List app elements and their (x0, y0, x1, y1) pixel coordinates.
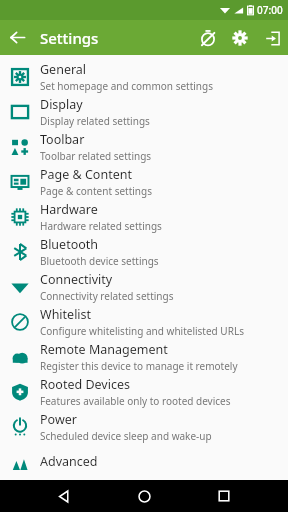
button[interactable]: Whitelist (0, 304, 288, 339)
button[interactable]: Display (0, 94, 288, 129)
button[interactable]: Exit (256, 22, 288, 54)
staticText: Whitelist (40, 306, 92, 323)
button[interactable]: Hardware (0, 199, 288, 234)
staticText: Rooted Devices (40, 376, 130, 393)
staticText: Hardware (40, 201, 98, 218)
staticText: Register this device to manage it remote… (40, 359, 238, 373)
staticText: Configure whitelisting and whitelisted U… (40, 324, 244, 338)
staticText: Settings (40, 28, 99, 48)
button[interactable]: Power (0, 409, 288, 444)
staticText: Page & Content (40, 166, 132, 183)
button[interactable]: General (0, 59, 288, 94)
staticText: Toolbar related settings (40, 149, 152, 163)
button[interactable]: Back (48, 480, 80, 512)
staticText: Remote Management (40, 341, 168, 358)
button[interactable]: Remote Management (0, 339, 288, 374)
button[interactable]: Rooted Devices (0, 374, 288, 409)
button[interactable]: Back (0, 20, 35, 55)
button[interactable]: Connectivity (0, 269, 288, 304)
button[interactable]: Bluetooth (0, 234, 288, 269)
staticText: Advanced (40, 453, 98, 470)
staticText: Toolbar (40, 131, 85, 148)
staticText: Hardware related settings (40, 219, 162, 233)
staticText: Display (40, 96, 83, 113)
staticText: Connectivity (40, 271, 113, 288)
staticText: Page & content settings (40, 184, 152, 198)
staticText: Power (40, 411, 77, 428)
button[interactable]: Home (128, 480, 160, 512)
staticText: Connectivity related settings (40, 289, 174, 303)
staticText: Features available only to rooted device… (40, 394, 231, 408)
button[interactable]: Disable timer (192, 22, 224, 54)
button[interactable]: Toolbar (0, 129, 288, 164)
staticText: Set homepage and common settings (40, 79, 213, 93)
staticText: Display related settings (40, 114, 150, 128)
button[interactable]: Settings (224, 22, 256, 54)
staticText: 07:00 (257, 3, 283, 17)
staticText: Bluetooth (40, 236, 99, 253)
staticText: Bluetooth device settings (40, 254, 159, 268)
button[interactable]: Page & Content (0, 164, 288, 199)
staticText: Scheduled device sleep and wake-up (40, 429, 212, 443)
button[interactable]: Advanced (0, 444, 288, 479)
button[interactable]: Recents (208, 480, 240, 512)
staticText: General (40, 61, 87, 78)
